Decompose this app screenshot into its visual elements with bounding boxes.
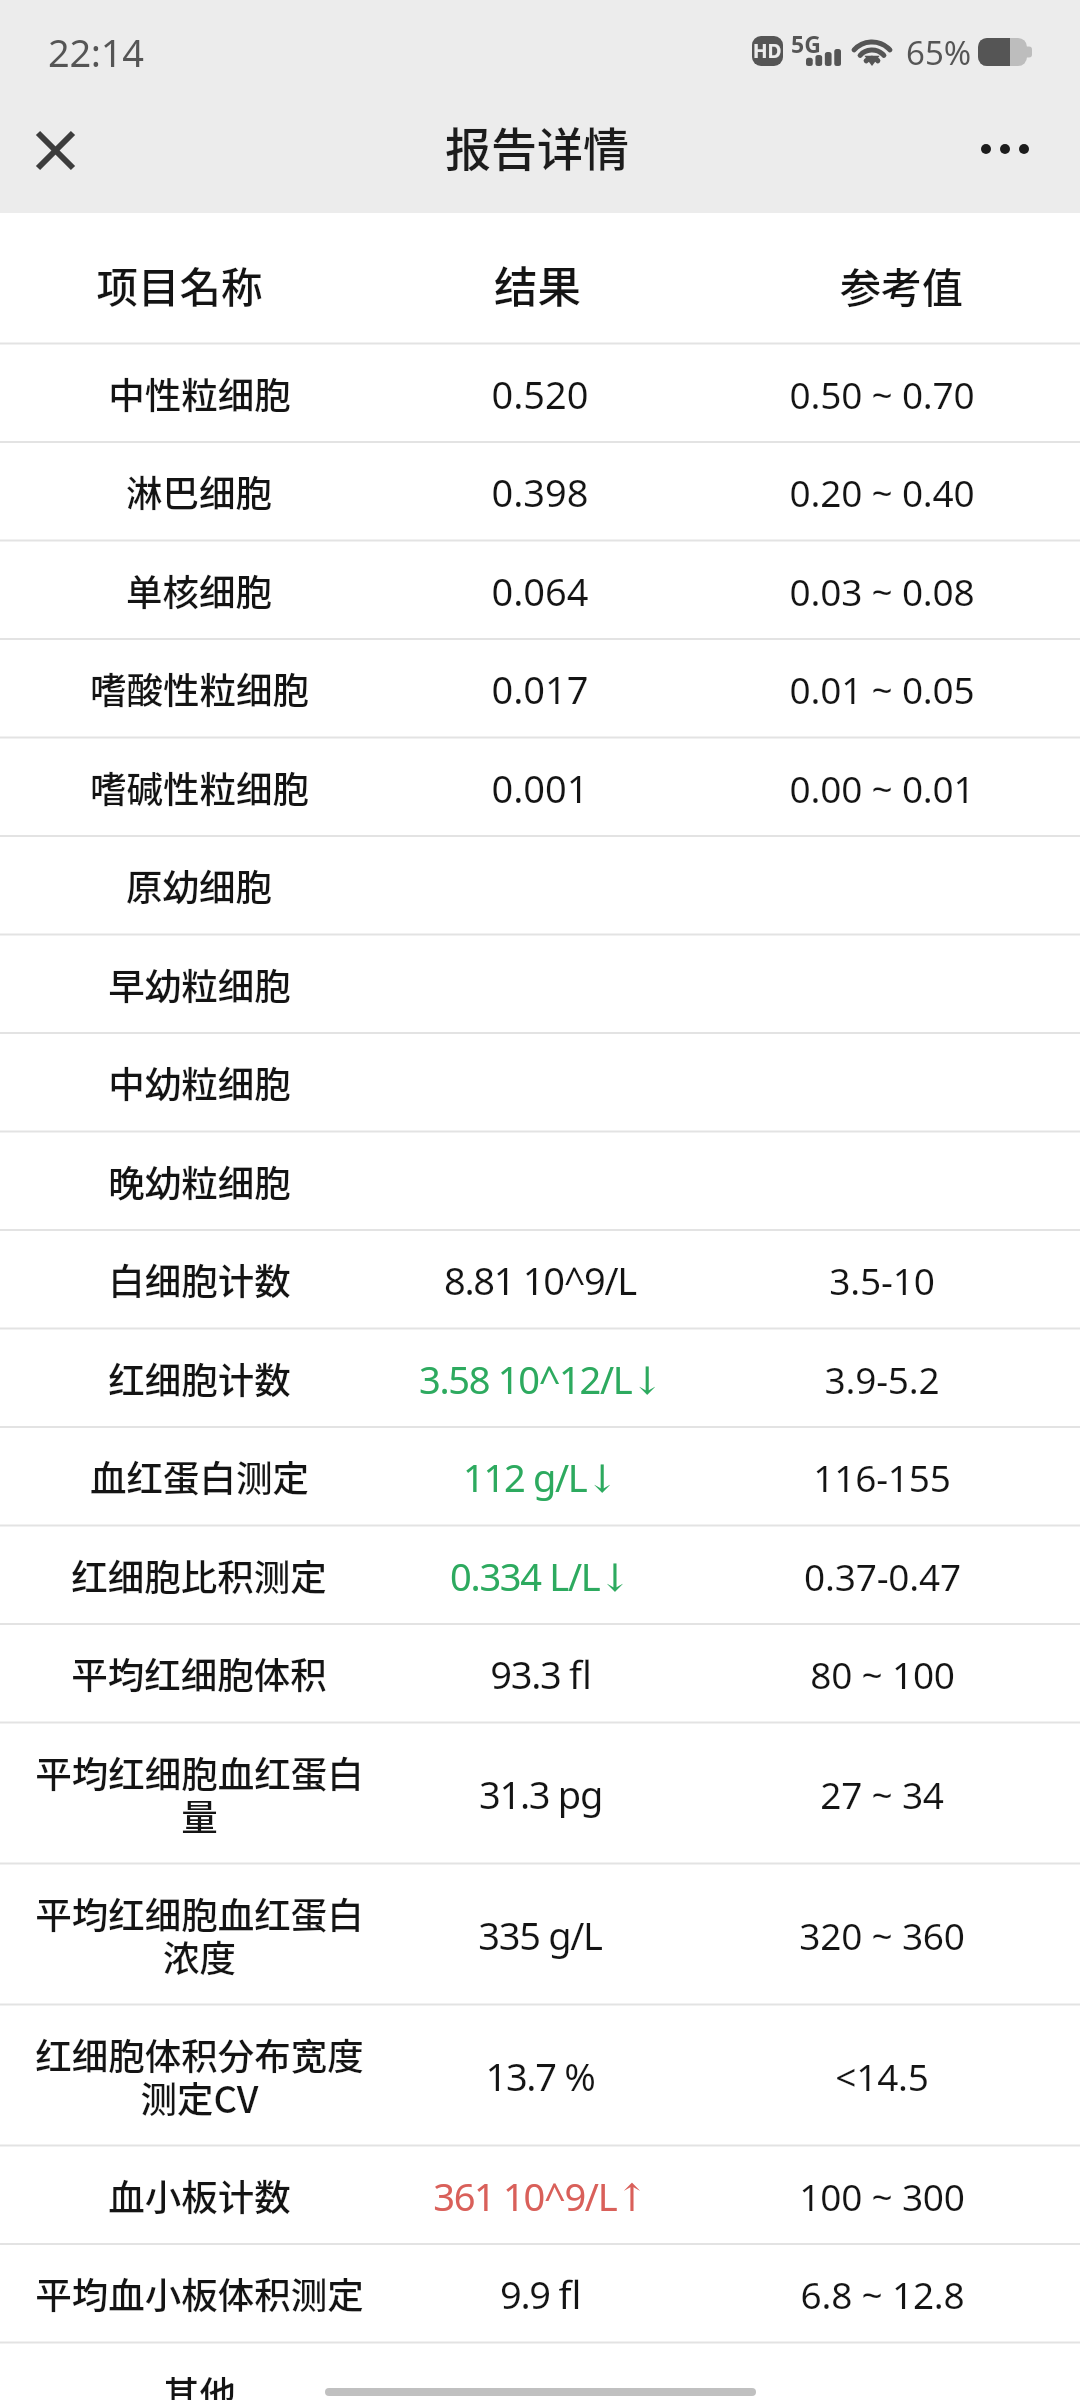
- staticText: 平均红细胞血红蛋白: [35, 1746, 364, 1799]
- staticText: 31.3 pg: [479, 1768, 602, 1820]
- staticText: 9.9 fl: [500, 2268, 580, 2320]
- staticText: 22:14: [48, 26, 144, 78]
- staticText: 血红蛋白测定: [90, 1450, 309, 1503]
- staticText: 早幼粒细胞: [108, 958, 291, 1011]
- staticText: 0.064: [491, 565, 589, 617]
- button[interactable]: [0, 1723, 1080, 1864]
- staticText: 93.3 fl: [490, 1648, 591, 1700]
- button[interactable]: More options: [969, 113, 1041, 185]
- staticText: 红细胞计数: [108, 1352, 291, 1405]
- staticText: 0.398: [491, 466, 589, 518]
- staticText: 红细胞体积分布宽度: [35, 2028, 364, 2081]
- button[interactable]: Close: [19, 114, 91, 186]
- staticText: 单核细胞: [126, 564, 272, 617]
- staticText: 结果: [494, 253, 581, 316]
- staticText: 中幼粒细胞: [108, 1056, 291, 1109]
- staticText: 红细胞比积测定: [71, 1549, 327, 1602]
- staticText: 0.37-0.47: [804, 1551, 961, 1601]
- staticText: 116-155: [813, 1452, 951, 1502]
- staticText: 嗜碱性粒细胞: [90, 761, 309, 814]
- staticText: 3.5-10: [829, 1255, 935, 1305]
- staticText: 量: [181, 1789, 218, 1842]
- staticText: 0.334 L/L↓: [450, 1550, 630, 1602]
- staticText: 0.001: [491, 762, 589, 814]
- staticText: 平均血小板体积测定: [35, 2267, 364, 2320]
- button[interactable]: [0, 442, 1080, 541]
- staticText: 0.50 ~ 0.70: [789, 369, 975, 419]
- staticText: 淋巴细胞: [126, 465, 272, 518]
- staticText: 参考值: [840, 255, 963, 314]
- button[interactable]: [0, 1329, 1080, 1428]
- staticText: 335 g/L: [478, 1909, 602, 1961]
- staticText: 13.7 %: [485, 2050, 595, 2102]
- staticText: 原幼细胞: [126, 859, 272, 912]
- staticText: 嗜酸性粒细胞: [90, 662, 309, 715]
- staticText: <14.5: [835, 2051, 929, 2101]
- button[interactable]: [0, 639, 1080, 738]
- staticText: 中性粒细胞: [108, 367, 291, 420]
- staticText: 3.58 10^12/L↓: [419, 1353, 662, 1405]
- button[interactable]: [0, 1033, 1080, 1132]
- staticText: 5G: [791, 28, 821, 59]
- button[interactable]: [0, 1624, 1080, 1723]
- staticText: 100 ~ 300: [799, 2171, 965, 2221]
- button[interactable]: [0, 2146, 1080, 2245]
- staticText: HD: [753, 38, 782, 64]
- staticText: 其他: [163, 2366, 236, 2400]
- button[interactable]: [0, 935, 1080, 1034]
- staticText: 65%: [906, 30, 972, 75]
- staticText: 项目名称: [96, 255, 263, 315]
- button[interactable]: [0, 2343, 1080, 2400]
- staticText: 浓度: [163, 1930, 236, 1983]
- staticText: 平均红细胞血红蛋白: [35, 1887, 364, 1940]
- button[interactable]: [0, 541, 1080, 640]
- staticText: 报告详情: [445, 113, 629, 180]
- staticText: 0.00 ~ 0.01: [789, 763, 975, 813]
- button[interactable]: [0, 2005, 1080, 2146]
- staticText: 80 ~ 100: [810, 1649, 955, 1699]
- staticText: 晚幼粒细胞: [108, 1155, 291, 1208]
- staticText: 0.017: [491, 663, 589, 715]
- button[interactable]: [0, 1864, 1080, 2005]
- button[interactable]: [0, 2244, 1080, 2343]
- staticText: 8.81 10^9/L: [444, 1254, 636, 1306]
- staticText: 0.03 ~ 0.08: [789, 566, 975, 616]
- staticText: 平均红细胞体积: [71, 1647, 327, 1700]
- staticText: 3.9-5.2: [824, 1354, 940, 1404]
- button[interactable]: [0, 1526, 1080, 1625]
- staticText: 测定CV: [140, 2071, 259, 2124]
- staticText: 27 ~ 34: [820, 1769, 944, 1819]
- button[interactable]: [0, 1427, 1080, 1526]
- staticText: 361 10^9/L↑: [433, 2170, 647, 2222]
- button[interactable]: [0, 738, 1080, 837]
- staticText: 112 g/L↓: [463, 1451, 617, 1503]
- staticText: 0.520: [491, 368, 589, 420]
- staticText: 血小板计数: [108, 2169, 291, 2222]
- button[interactable]: [0, 836, 1080, 935]
- staticText: 6.8 ~ 12.8: [800, 2269, 965, 2319]
- button[interactable]: [0, 1132, 1080, 1231]
- staticText: 0.20 ~ 0.40: [789, 467, 975, 517]
- staticText: 0.01 ~ 0.05: [789, 664, 975, 714]
- button[interactable]: [0, 1230, 1080, 1329]
- staticText: 320 ~ 360: [799, 1910, 965, 1960]
- button[interactable]: [0, 344, 1080, 443]
- staticText: 白细胞计数: [108, 1253, 291, 1306]
